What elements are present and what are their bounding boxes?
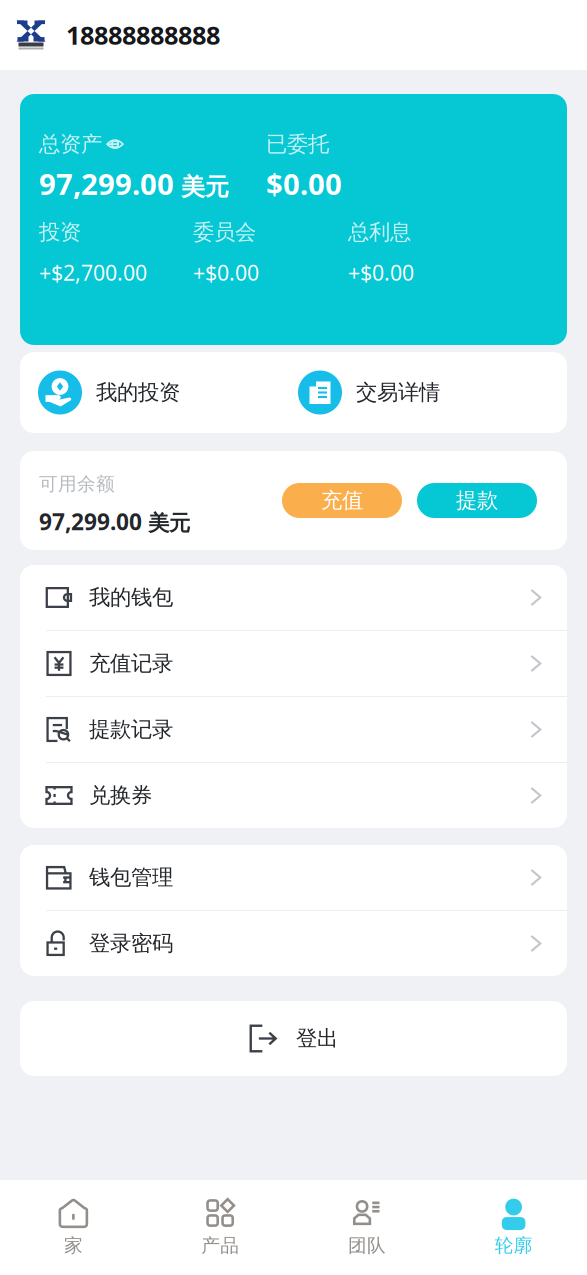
staticText: 提款 <box>456 487 498 514</box>
button[interactable]: 充值 <box>282 483 402 518</box>
button[interactable]: 轮廓 <box>440 1180 587 1275</box>
staticText: 已委托 <box>266 131 329 157</box>
staticText: 投资 <box>39 219 81 245</box>
button[interactable]: 团队 <box>293 1180 440 1275</box>
staticText: 登出 <box>296 1025 338 1052</box>
button[interactable]: 登出 <box>20 1001 567 1076</box>
staticText: 提款记录 <box>89 716 173 743</box>
staticText: 轮廓 <box>495 1234 533 1257</box>
button[interactable]: 提款记录 <box>20 697 567 763</box>
staticText: 团队 <box>348 1234 386 1257</box>
staticText: 产品 <box>201 1234 239 1257</box>
staticText: 家 <box>64 1234 83 1257</box>
button[interactable]: 钱包管理 <box>20 845 567 911</box>
button[interactable]: 家 <box>0 1180 147 1275</box>
staticText: 委员会 <box>193 219 256 245</box>
staticText: 18888888888 <box>66 18 220 52</box>
staticText: 我的钱包 <box>89 584 173 611</box>
staticText: 美元 <box>148 510 190 536</box>
button[interactable]: 提款 <box>417 483 537 518</box>
staticText: 钱包管理 <box>89 864 173 891</box>
staticText: 97,299.00 <box>39 506 142 536</box>
button[interactable]: 登录密码 <box>20 911 567 976</box>
staticText: 充值记录 <box>89 650 173 677</box>
staticText: 可用余额 <box>39 472 115 495</box>
button[interactable]: 我的钱包 <box>20 565 567 631</box>
staticText: 美元 <box>181 172 229 202</box>
staticText: +$0.00 <box>193 258 259 287</box>
button[interactable]: 产品 <box>147 1180 294 1275</box>
button[interactable]: 兑换券 <box>20 763 567 828</box>
staticText: 登录密码 <box>89 930 173 957</box>
staticText: +$0.00 <box>348 258 414 287</box>
staticText: 充值 <box>321 487 363 514</box>
button[interactable]: 我的投资 <box>38 370 180 414</box>
staticText: 总利息 <box>348 219 411 245</box>
staticText: 我的投资 <box>96 379 180 406</box>
staticText: 97,299.00 <box>39 164 174 203</box>
staticText: 兑换券 <box>89 782 152 809</box>
staticText: $0.00 <box>266 164 342 203</box>
staticText: 交易详情 <box>356 379 440 406</box>
staticText: +$2,700.00 <box>39 258 147 287</box>
button[interactable]: 充值记录 <box>20 631 567 697</box>
button[interactable]: 交易详情 <box>298 370 440 414</box>
staticText: 总资产 <box>39 131 102 157</box>
